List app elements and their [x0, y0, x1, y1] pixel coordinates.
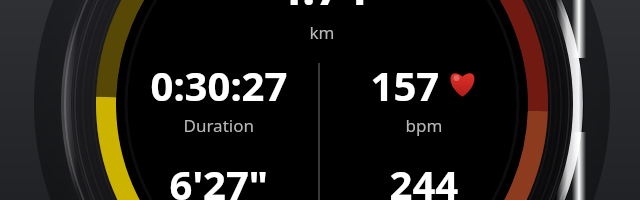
button[interactable]: Running workout stats on watch	[0, 0, 640, 200]
